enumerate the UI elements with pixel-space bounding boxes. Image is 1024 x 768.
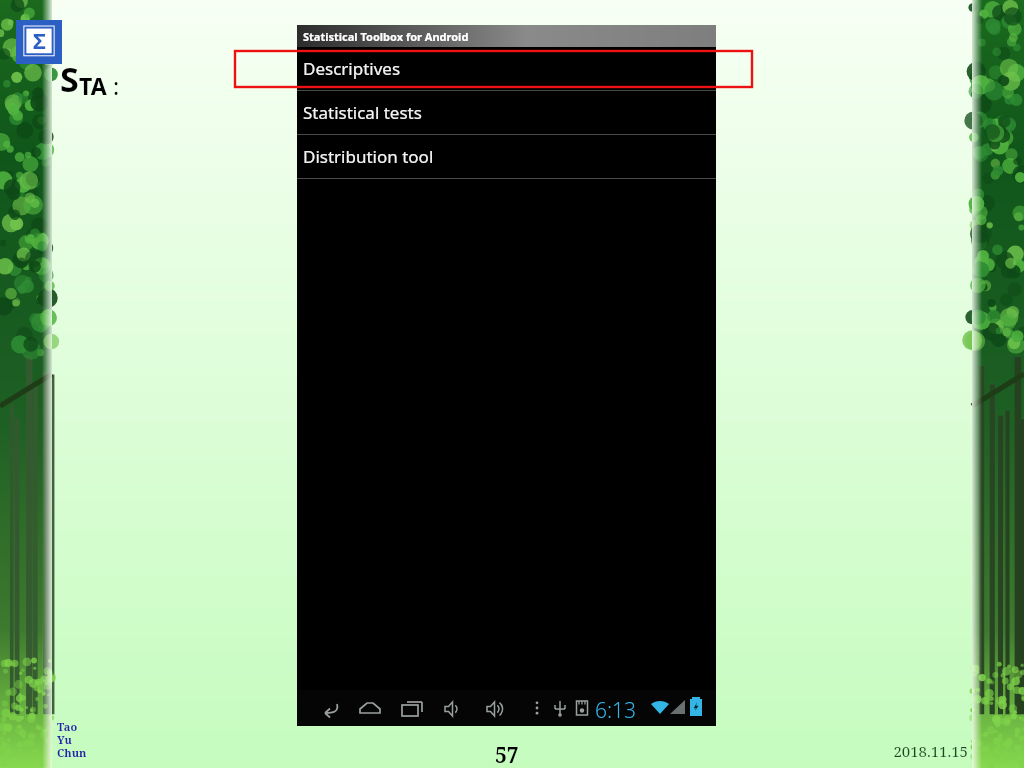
staticText: 6:13 [595,696,637,725]
other: Sigma logo [16,20,62,64]
staticText: Statistical Toolbox for Android [303,29,469,44]
staticText: Tao [57,719,78,734]
button[interactable]: Home [353,690,387,726]
button[interactable]: Back [311,690,345,726]
staticText: 2018.11.15 [893,741,968,761]
staticText: 57 [495,741,519,768]
button[interactable]: Volume up [479,690,513,726]
button[interactable]: Statistical tests [297,91,716,134]
staticText: Statistical tests [303,101,422,124]
staticText: : [107,70,120,101]
staticText: Distribution tool [303,145,434,168]
button[interactable]: Distribution tool [297,135,716,178]
staticText: Yu [57,732,72,747]
staticText: TA [79,70,107,101]
button[interactable]: More options [525,690,549,726]
staticText: S [60,56,79,102]
button[interactable]: Descriptives [297,47,716,90]
button[interactable]: Volume down [437,690,471,726]
button[interactable]: Recent apps [395,690,429,726]
staticText: Descriptives [303,57,401,80]
staticText: Σ [33,25,46,55]
staticText: Chun [57,745,87,760]
